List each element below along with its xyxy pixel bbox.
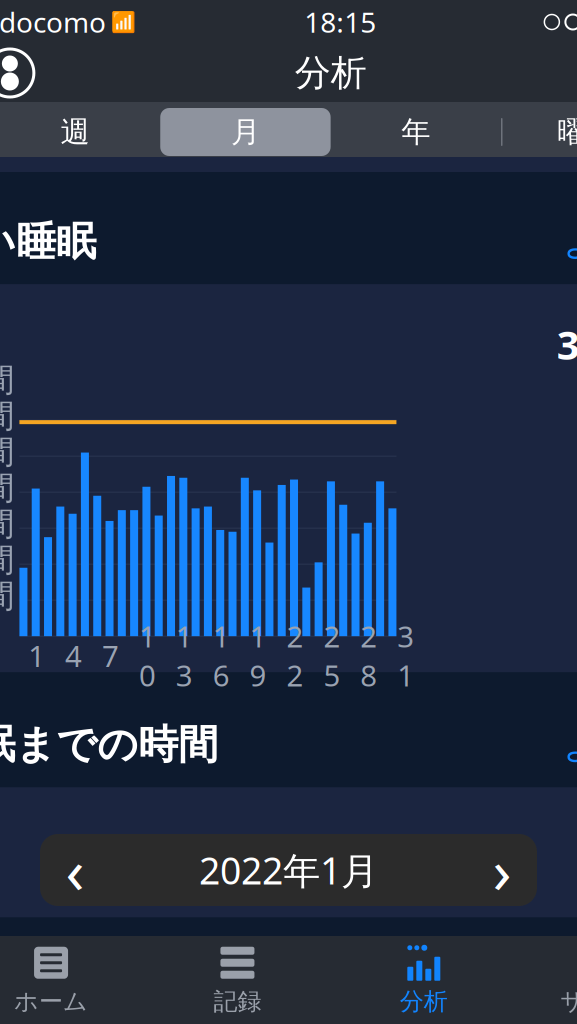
staticText xyxy=(82,636,90,675)
staticText: 1 xyxy=(28,636,45,675)
staticText xyxy=(229,636,237,675)
staticText xyxy=(377,636,385,675)
staticText: 0時間 xyxy=(0,573,14,616)
staticText xyxy=(352,636,360,675)
staticText: › xyxy=(492,829,511,911)
staticText: 4 xyxy=(65,636,82,675)
button[interactable]: 記録 xyxy=(144,940,331,1020)
staticText: より詳しく xyxy=(563,219,577,264)
staticText: 16 xyxy=(213,617,230,695)
staticText xyxy=(266,636,274,675)
button[interactable]: より詳しく xyxy=(563,723,577,767)
button[interactable]: 分析 xyxy=(331,940,517,1020)
staticText: ホーム xyxy=(14,987,88,1016)
staticText: 2022年1月 xyxy=(199,845,378,895)
staticText: 6時間 xyxy=(0,357,14,400)
staticText: 7 xyxy=(102,636,119,675)
staticText xyxy=(242,636,250,675)
staticText: 1時間 xyxy=(0,537,14,580)
staticText: 19 xyxy=(250,617,267,695)
staticText: 18:15 xyxy=(304,3,376,41)
staticText: 分析 xyxy=(400,987,448,1016)
staticText xyxy=(303,636,311,675)
button[interactable]: サウンド xyxy=(517,940,577,1020)
staticText: 3時間 xyxy=(0,465,14,508)
staticText xyxy=(168,636,176,675)
staticText xyxy=(340,636,348,675)
staticText: 記録 xyxy=(213,987,261,1016)
staticText: 22 xyxy=(286,617,303,695)
staticText xyxy=(57,636,65,675)
staticText: 月 xyxy=(231,114,260,150)
button[interactable]: 年 xyxy=(331,108,501,156)
staticText xyxy=(389,636,397,675)
staticText: 25 xyxy=(323,617,340,695)
staticText: 📶 xyxy=(111,11,136,33)
staticText: 分析 xyxy=(295,51,367,95)
button[interactable]: ‹ xyxy=(0,834,577,906)
staticText: 入眠までの時間 xyxy=(0,720,218,769)
staticText: 28 xyxy=(360,617,377,695)
staticText: 週 xyxy=(61,114,90,150)
staticText: 10 xyxy=(139,617,156,695)
button[interactable]: 曜日 xyxy=(501,108,577,156)
staticText: docomo xyxy=(0,3,106,41)
staticText xyxy=(45,636,53,675)
button[interactable]: 週 xyxy=(0,108,160,156)
staticText xyxy=(193,636,201,675)
button[interactable]: プロフィール xyxy=(0,45,38,101)
staticText xyxy=(94,636,102,675)
staticText xyxy=(156,636,164,675)
staticText xyxy=(119,636,127,675)
staticText xyxy=(131,636,139,675)
staticText: サウンド xyxy=(560,987,577,1016)
staticText: 5時間 xyxy=(0,393,14,436)
staticText: 4時間 xyxy=(0,429,14,472)
staticText xyxy=(279,636,287,675)
button[interactable]: より詳しく xyxy=(563,219,577,264)
staticText: 2時間 xyxy=(0,501,14,544)
staticText: 深い睡眠 xyxy=(0,217,96,266)
staticText xyxy=(205,636,213,675)
staticText: 曜日 xyxy=(557,114,577,150)
staticText: 13 xyxy=(176,617,193,695)
button[interactable]: 月 xyxy=(160,108,331,156)
staticText: ‹ xyxy=(65,829,84,911)
staticText: 3 xyxy=(557,318,577,371)
button[interactable]: ホーム xyxy=(0,940,144,1020)
staticText: 年 xyxy=(401,114,430,150)
staticText: より詳しく xyxy=(563,723,577,767)
staticText: 31 xyxy=(397,617,414,695)
staticText xyxy=(316,636,324,675)
